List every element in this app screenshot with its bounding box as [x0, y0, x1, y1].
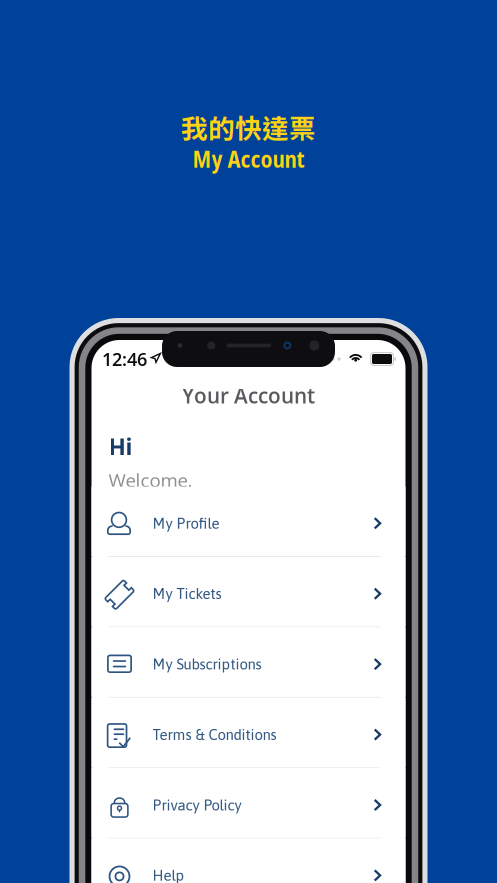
button[interactable]: Help — [91, 839, 405, 883]
button[interactable]: Terms & Conditions — [91, 698, 405, 767]
button[interactable]: My Tickets — [91, 557, 405, 626]
staticText: 我的快達票 — [181, 108, 316, 146]
staticText: 12:46 — [102, 347, 147, 371]
staticText: Privacy Policy — [152, 796, 241, 813]
button[interactable]: Privacy Policy — [91, 768, 405, 838]
staticText: Terms & Conditions — [152, 726, 276, 743]
staticText: Help — [152, 867, 184, 883]
staticText: Your Account — [182, 381, 315, 409]
staticText: Hi — [108, 431, 132, 462]
button[interactable]: My Subscriptions — [91, 627, 405, 697]
staticText: My Subscriptions — [152, 656, 261, 673]
staticText: My Tickets — [152, 585, 221, 602]
staticText: My Profile — [152, 515, 219, 532]
staticText: Welcome. — [108, 467, 192, 493]
staticText: My Account — [192, 144, 304, 174]
button[interactable]: My Profile — [91, 487, 405, 556]
